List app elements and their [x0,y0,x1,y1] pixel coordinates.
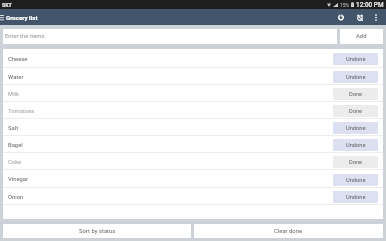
button[interactable]: Salt [3,119,383,135]
staticText: Cheese [8,56,28,63]
staticText: Undone [346,177,366,184]
button[interactable]: Clear done [194,224,383,238]
button[interactable]: Undone [333,71,378,83]
button[interactable]: Cheese [3,49,383,67]
staticText: Undone [346,142,366,149]
staticText: Sort by status [79,228,116,235]
staticText: Undone [346,74,366,81]
staticText: Undone [346,56,366,63]
button[interactable]: Alarm off [350,9,369,25]
staticText: 12:00 PM [356,1,384,9]
staticText: Bagel [8,142,23,149]
staticText: Onion [8,194,24,201]
staticText: Coke [8,159,22,166]
button[interactable]: Add [340,29,383,44]
button[interactable]: Undone [333,174,378,186]
button[interactable]: Sort by status [3,224,191,238]
staticText: Done [349,159,363,166]
button[interactable]: Done [333,88,378,100]
staticText: 15% [340,2,350,8]
staticText: Salt [8,125,19,132]
button[interactable]: Water [3,68,383,84]
staticText: Undone [346,125,366,132]
staticText: Vinegar [8,176,29,183]
staticText: Done [349,108,363,115]
button[interactable]: Undone [333,122,378,134]
button[interactable]: Undone [333,139,378,151]
staticText: Milk [8,91,19,98]
staticText: Add [356,33,367,40]
button[interactable]: Undone [333,191,378,203]
button[interactable]: Coke [3,153,383,169]
button[interactable]: More options [369,9,382,25]
staticText: Grocery list [6,14,38,21]
staticText: Enter the items [5,33,45,40]
staticText: Done [349,91,363,98]
staticText: Clear done [274,228,303,235]
staticText: SKT [2,2,12,8]
button[interactable]: Bagel [3,136,383,152]
button[interactable]: Undone [333,53,378,65]
staticText: Undone [346,194,366,201]
button[interactable]: Done [333,105,378,117]
button[interactable]: Done [333,156,378,168]
button[interactable]: Milk [3,85,383,101]
button[interactable]: Navigation menu [0,9,5,25]
staticText: Tomatoes [8,108,35,115]
staticText: Water [8,74,24,81]
button[interactable]: Onion [3,188,383,204]
button[interactable]: Enter the items [3,29,337,44]
button[interactable]: Vinegar [3,170,383,187]
button[interactable]: Tomatoes [3,102,383,118]
button[interactable]: Refresh [331,9,350,25]
